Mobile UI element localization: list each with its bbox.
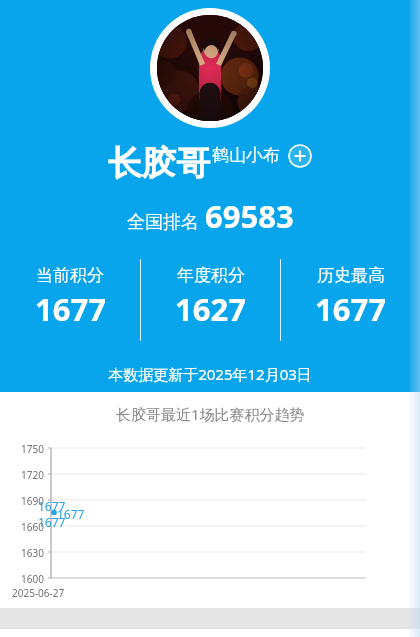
staticText: 长胶哥 xyxy=(108,142,210,185)
staticText: 历史最高 xyxy=(317,265,385,286)
staticText: 2025-06-27 xyxy=(12,586,65,600)
button[interactable]: Profile photo xyxy=(150,8,270,128)
staticText: 1720 xyxy=(21,468,44,482)
staticText: 长胶哥最近1场比赛积分趋势 xyxy=(116,404,305,424)
staticText: 1660 xyxy=(21,520,44,534)
staticText: 1750 xyxy=(21,442,44,456)
staticText: 1690 xyxy=(21,494,44,508)
button[interactable]: 当前积分 xyxy=(0,259,140,330)
staticText: 1630 xyxy=(21,546,44,560)
staticText: 1677 xyxy=(38,498,66,514)
staticText: 鹤山小布 xyxy=(212,145,280,166)
staticText: 全国排名 xyxy=(127,211,199,234)
staticText: 当前积分 xyxy=(36,265,104,286)
staticText: 1627 xyxy=(175,288,246,330)
staticText: 1677 xyxy=(38,514,66,530)
staticText: 1677 xyxy=(57,506,85,522)
staticText: 1600 xyxy=(21,572,44,586)
button[interactable]: 历史最高 xyxy=(281,259,420,330)
button[interactable]: 年度积分 xyxy=(141,259,280,330)
staticText: 年度积分 xyxy=(177,265,245,286)
staticText: 1677 xyxy=(315,288,386,330)
staticText: 本数据更新于2025年12月03日 xyxy=(108,364,312,384)
button[interactable]: Follow xyxy=(288,144,312,168)
staticText: 69583 xyxy=(205,195,294,237)
staticText: 1677 xyxy=(35,288,106,330)
